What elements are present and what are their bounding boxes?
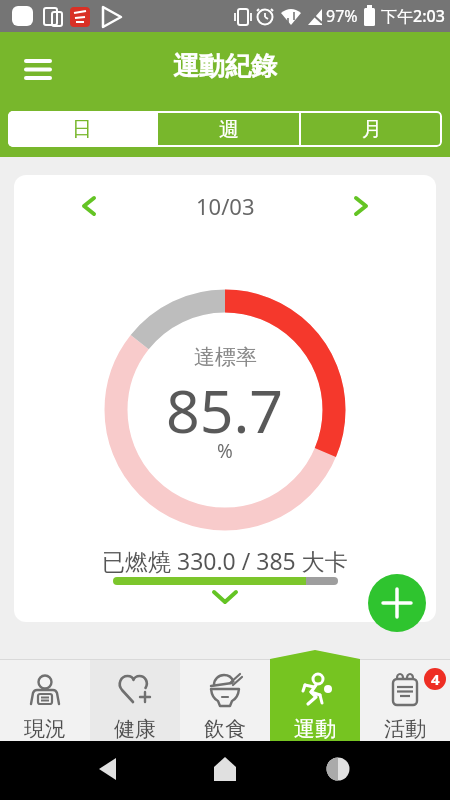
staticText: 85.7 [166, 370, 284, 450]
staticText: 日 [72, 117, 92, 142]
staticText: 4 [431, 669, 440, 689]
staticText: 運動 [294, 716, 336, 741]
staticText: 97% [326, 5, 358, 27]
staticText: 已燃燒 330.0 / 385 大卡 [102, 545, 348, 576]
button[interactable]: 週 [158, 111, 299, 147]
button[interactable] [212, 590, 238, 604]
staticText: 達標率 [194, 344, 257, 370]
button[interactable] [24, 58, 52, 80]
button[interactable]: 日 [8, 111, 156, 147]
staticText: 飲食 [204, 716, 246, 741]
staticText: 健康 [114, 716, 156, 741]
staticText: 週 [219, 117, 239, 142]
staticText: 下午2:03 [381, 5, 445, 27]
button[interactable]: 運動 [270, 650, 360, 741]
button[interactable]: 健康 [90, 660, 180, 741]
button[interactable] [354, 197, 368, 215]
button[interactable]: 活動 [360, 660, 450, 741]
staticText: 10/03 [196, 191, 255, 221]
staticText: 運動紀錄 [173, 50, 277, 83]
button[interactable] [368, 574, 426, 632]
staticText: 現況 [24, 716, 66, 741]
staticText: % [217, 438, 233, 464]
staticText: 活動 [384, 716, 426, 741]
button[interactable]: 月 [301, 111, 442, 147]
button[interactable] [82, 197, 96, 215]
button[interactable]: 現況 [0, 660, 90, 741]
staticText: 月 [362, 117, 382, 142]
button[interactable]: 飲食 [180, 660, 270, 741]
